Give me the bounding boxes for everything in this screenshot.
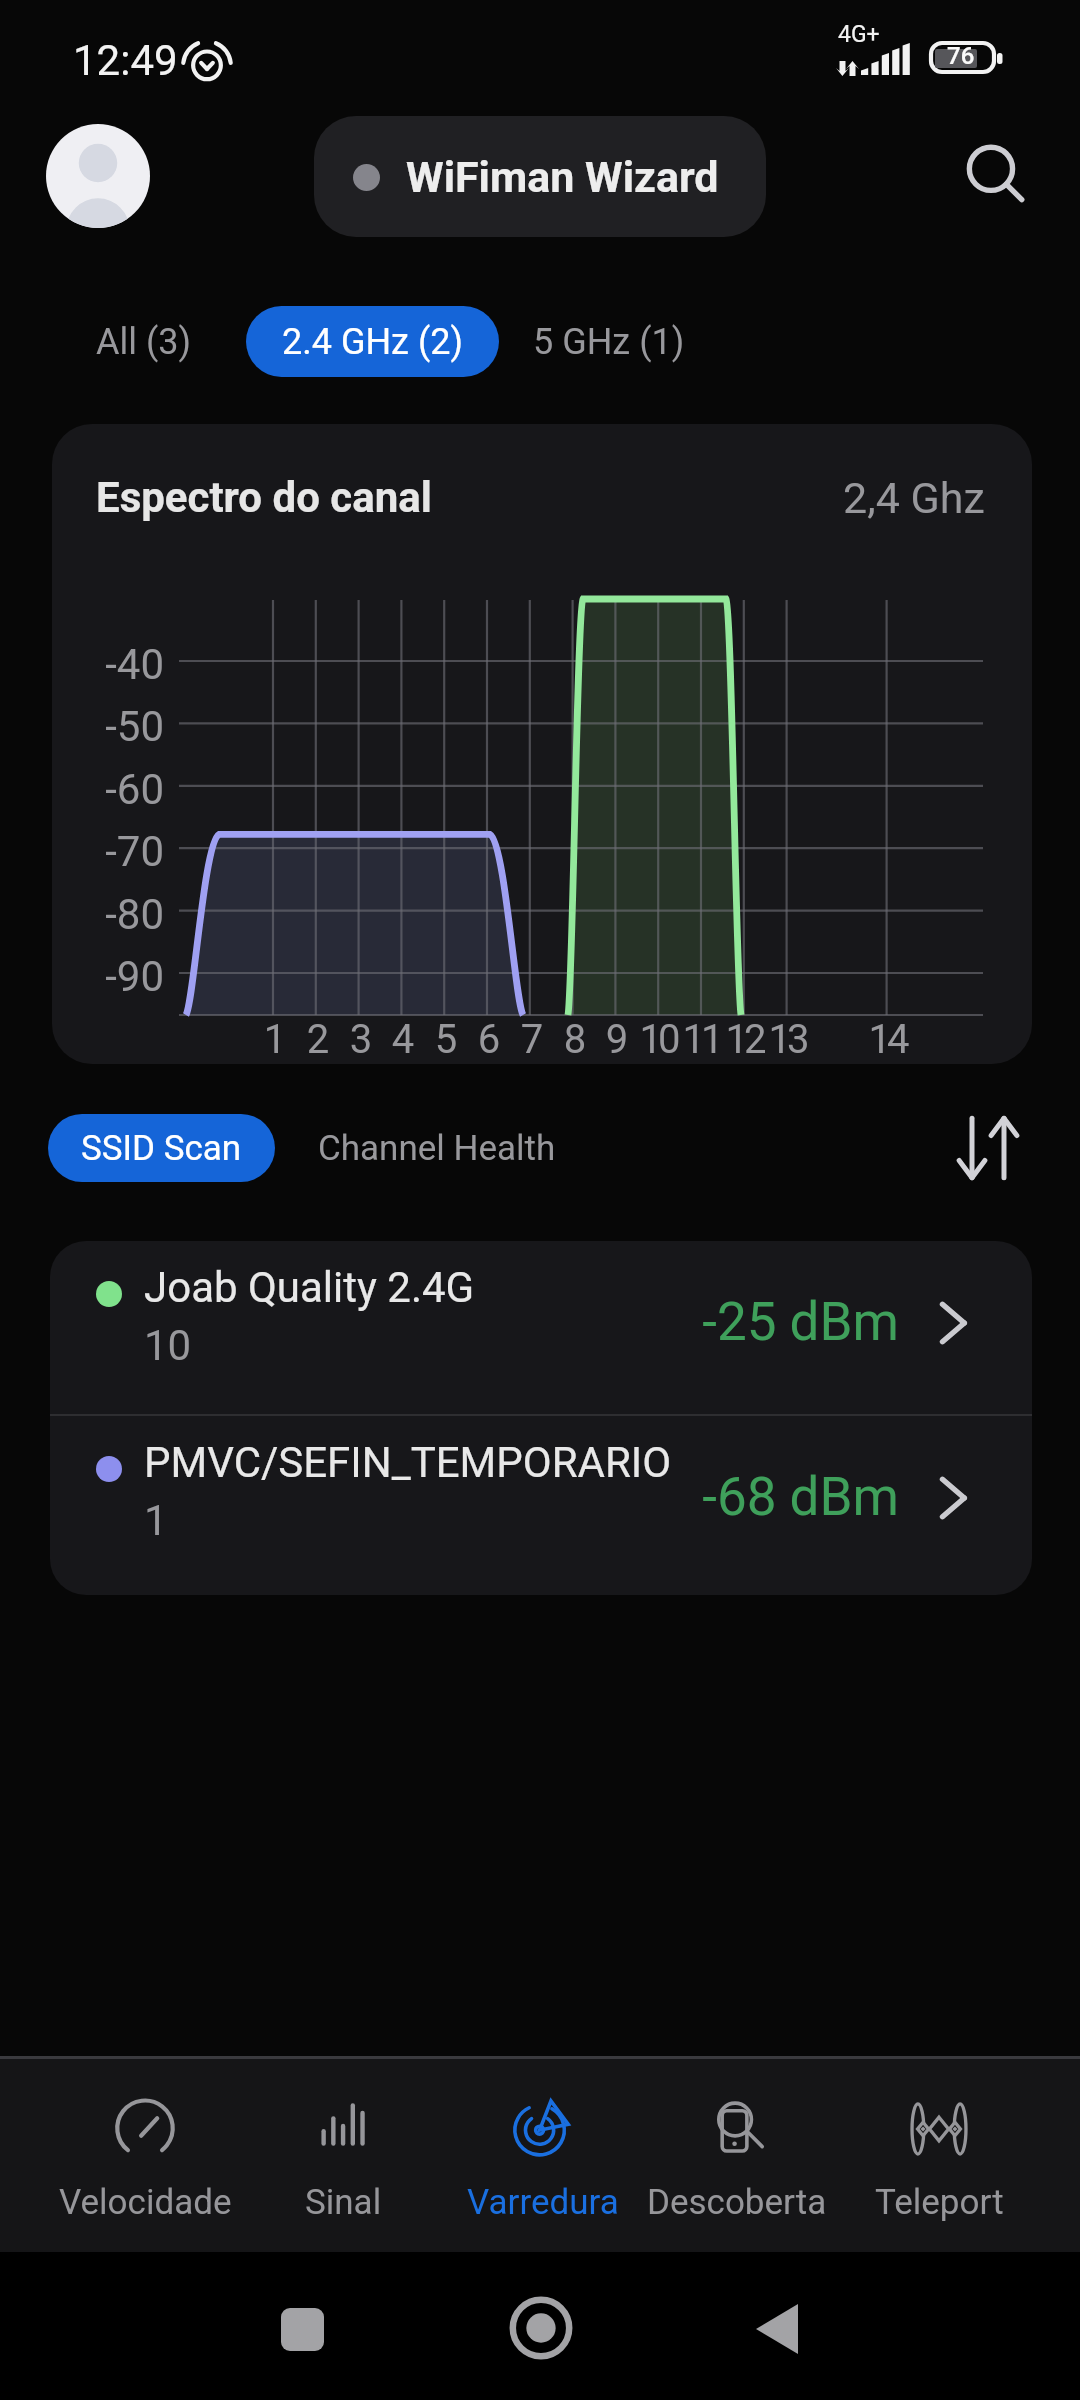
staticText: 1 <box>144 1496 168 1545</box>
staticText: -40 <box>52 640 164 689</box>
button[interactable]: Home <box>481 2268 601 2388</box>
staticText: 5 GHz (1) <box>533 321 685 363</box>
button[interactable]: Descoberta <box>632 2072 842 2250</box>
staticText: -25 dBm <box>650 1291 899 1353</box>
staticText: WiFiman Wizard <box>406 152 719 202</box>
staticText: 13 <box>747 1016 827 1063</box>
button[interactable]: Channel Health <box>300 1110 600 1186</box>
staticText: -90 <box>52 952 164 1001</box>
staticText: 10 <box>618 1016 698 1063</box>
staticText: Velocidade <box>59 2182 232 2223</box>
staticText: Channel Health <box>318 1128 556 1169</box>
staticText: 2,4 Ghz <box>843 473 985 523</box>
staticText: 7 <box>490 1016 570 1063</box>
button[interactable]: Back <box>717 2269 837 2389</box>
staticText: 2 <box>276 1016 356 1063</box>
staticText: Teleport <box>875 2182 1004 2223</box>
staticText: 76 <box>947 42 975 70</box>
staticText: -68 dBm <box>650 1466 899 1528</box>
button[interactable]: 5 GHz (1) <box>516 306 702 377</box>
staticText: Sinal <box>305 2182 382 2223</box>
button[interactable]: Sinal <box>238 2072 448 2250</box>
staticText: Espectro do canal <box>96 473 432 522</box>
button[interactable]: Varredura <box>438 2072 648 2250</box>
button[interactable]: Joab Quality 2.4G <box>50 1241 1032 1414</box>
staticText: 5 <box>404 1016 484 1063</box>
staticText: 2.4 GHz (2) <box>282 321 463 363</box>
staticText: PMVC/SEFIN_TEMPORARIO <box>144 1438 672 1487</box>
button[interactable]: Velocidade <box>40 2072 250 2250</box>
button[interactable]: PMVC/SEFIN_TEMPORARIO <box>50 1416 1032 1595</box>
staticText: 14 <box>847 1016 927 1063</box>
button[interactable]: Sort <box>940 1100 1036 1196</box>
staticText: -60 <box>52 765 164 814</box>
staticText: 11 <box>661 1016 741 1063</box>
staticText: -50 <box>52 702 164 751</box>
button[interactable]: Profile <box>46 124 150 228</box>
staticText: 4 <box>361 1016 441 1063</box>
staticText: Varredura <box>467 2182 619 2223</box>
button[interactable]: All (3) <box>78 306 209 377</box>
button[interactable]: Teleport <box>834 2072 1044 2250</box>
staticText: All (3) <box>96 321 192 363</box>
staticText: 12 <box>704 1016 784 1063</box>
staticText: Joab Quality 2.4G <box>144 1263 475 1312</box>
staticText: 9 <box>575 1016 655 1063</box>
staticText: 3 <box>319 1016 399 1063</box>
staticText: Descoberta <box>647 2182 827 2223</box>
staticText: -80 <box>52 890 164 939</box>
staticText: 1 <box>233 1016 313 1063</box>
staticText: 8 <box>533 1016 613 1063</box>
staticText: 4G+ <box>838 21 880 48</box>
button[interactable]: Search <box>948 128 1044 224</box>
button[interactable]: 2.4 GHz (2) <box>246 306 499 377</box>
staticText: -70 <box>52 827 164 876</box>
staticText: 10 <box>144 1321 192 1370</box>
button[interactable]: Recents <box>242 2269 362 2389</box>
staticText: 12:49 <box>73 36 178 85</box>
button[interactable]: WiFiman Wizard <box>314 116 766 237</box>
button[interactable]: SSID Scan <box>48 1114 275 1182</box>
staticText: SSID Scan <box>81 1128 242 1169</box>
staticText: 6 <box>447 1016 527 1063</box>
